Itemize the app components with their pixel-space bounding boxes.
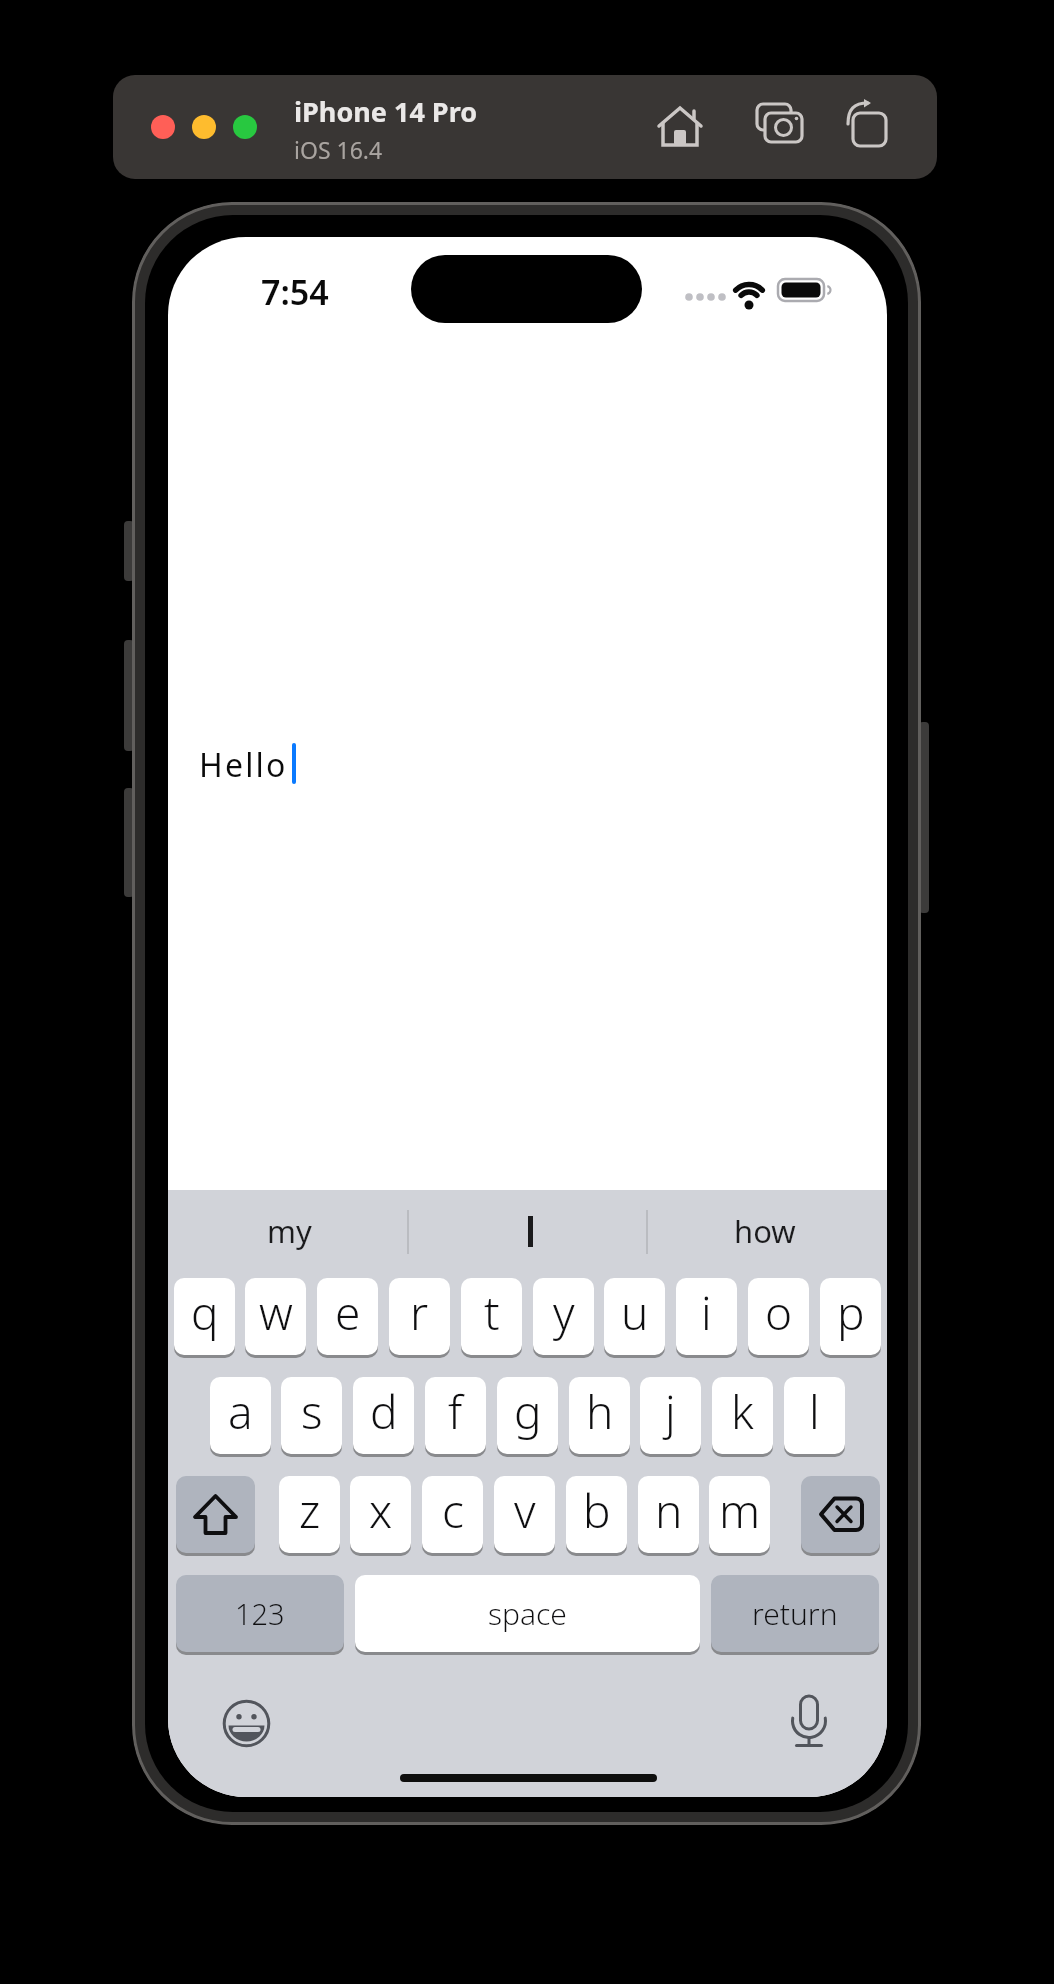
button[interactable]: y — [533, 1278, 594, 1355]
button[interactable]: h — [569, 1377, 630, 1454]
staticText: iPhone 14 Pro — [294, 93, 478, 130]
staticText: u — [621, 1281, 649, 1344]
button[interactable]: p — [820, 1278, 881, 1355]
staticText: space — [488, 1593, 567, 1634]
staticText: b — [583, 1479, 611, 1542]
staticText: j — [665, 1380, 676, 1443]
button[interactable]: my — [209, 1208, 369, 1254]
staticText: r — [410, 1281, 429, 1344]
button[interactable]: s — [281, 1377, 342, 1454]
button[interactable]: j — [640, 1377, 701, 1454]
staticText: i — [701, 1281, 712, 1344]
staticText: z — [299, 1479, 321, 1542]
staticText: x — [369, 1479, 393, 1542]
staticText: iOS 16.4 — [294, 134, 383, 165]
button[interactable]: w — [245, 1278, 306, 1355]
button[interactable]: i — [676, 1278, 737, 1355]
staticText: 7:54 — [261, 269, 329, 307]
button[interactable] — [753, 99, 809, 155]
staticText: k — [731, 1380, 754, 1443]
button[interactable]: b — [566, 1476, 627, 1553]
button[interactable]: u — [604, 1278, 665, 1355]
staticText: p — [837, 1281, 865, 1344]
staticText: h — [586, 1380, 614, 1443]
button[interactable]: d — [353, 1377, 414, 1454]
button[interactable]: l — [784, 1377, 845, 1454]
button[interactable]: z — [279, 1476, 340, 1553]
staticText: f — [448, 1380, 463, 1443]
button[interactable]: n — [638, 1476, 699, 1553]
button[interactable]: r — [389, 1278, 450, 1355]
staticText: d — [370, 1380, 398, 1443]
button[interactable]: e — [317, 1278, 378, 1355]
staticText: s — [301, 1380, 323, 1443]
staticText: l — [809, 1380, 820, 1443]
staticText: 123 — [235, 1594, 285, 1633]
button[interactable]: c — [422, 1476, 483, 1553]
button[interactable]: return — [711, 1575, 879, 1652]
button[interactable] — [222, 1699, 272, 1749]
button[interactable] — [801, 1476, 880, 1553]
staticText: y — [553, 1281, 575, 1344]
button[interactable]: o — [748, 1278, 809, 1355]
button[interactable]: t — [461, 1278, 522, 1355]
staticText: how — [734, 1210, 796, 1252]
staticText: return — [752, 1593, 838, 1634]
staticText: Hello — [199, 743, 288, 787]
staticText: v — [514, 1479, 536, 1542]
staticText: my — [267, 1210, 312, 1252]
staticText: n — [655, 1479, 683, 1542]
staticText: a — [228, 1380, 253, 1443]
button[interactable]: space — [355, 1575, 700, 1652]
button[interactable]: m — [709, 1476, 770, 1553]
button[interactable] — [840, 99, 896, 155]
button[interactable]: a — [210, 1377, 271, 1454]
button[interactable]: v — [494, 1476, 555, 1553]
button[interactable]: how — [685, 1208, 845, 1254]
staticText: m — [719, 1479, 761, 1542]
button[interactable]: k — [712, 1377, 773, 1454]
staticText: w — [259, 1281, 293, 1344]
button[interactable]: 123 — [176, 1575, 344, 1652]
button[interactable]: q — [174, 1278, 235, 1355]
button[interactable]: x — [350, 1476, 411, 1553]
button[interactable]: f — [425, 1377, 486, 1454]
button[interactable] — [176, 1476, 255, 1553]
staticText: o — [765, 1281, 793, 1344]
button[interactable] — [450, 1208, 610, 1254]
staticText: e — [335, 1281, 361, 1344]
button[interactable] — [652, 99, 708, 155]
staticText: c — [442, 1479, 464, 1542]
staticText: g — [514, 1380, 542, 1443]
button[interactable] — [785, 1689, 835, 1751]
staticText: t — [484, 1281, 500, 1344]
button[interactable]: g — [497, 1377, 558, 1454]
staticText: q — [191, 1281, 219, 1344]
